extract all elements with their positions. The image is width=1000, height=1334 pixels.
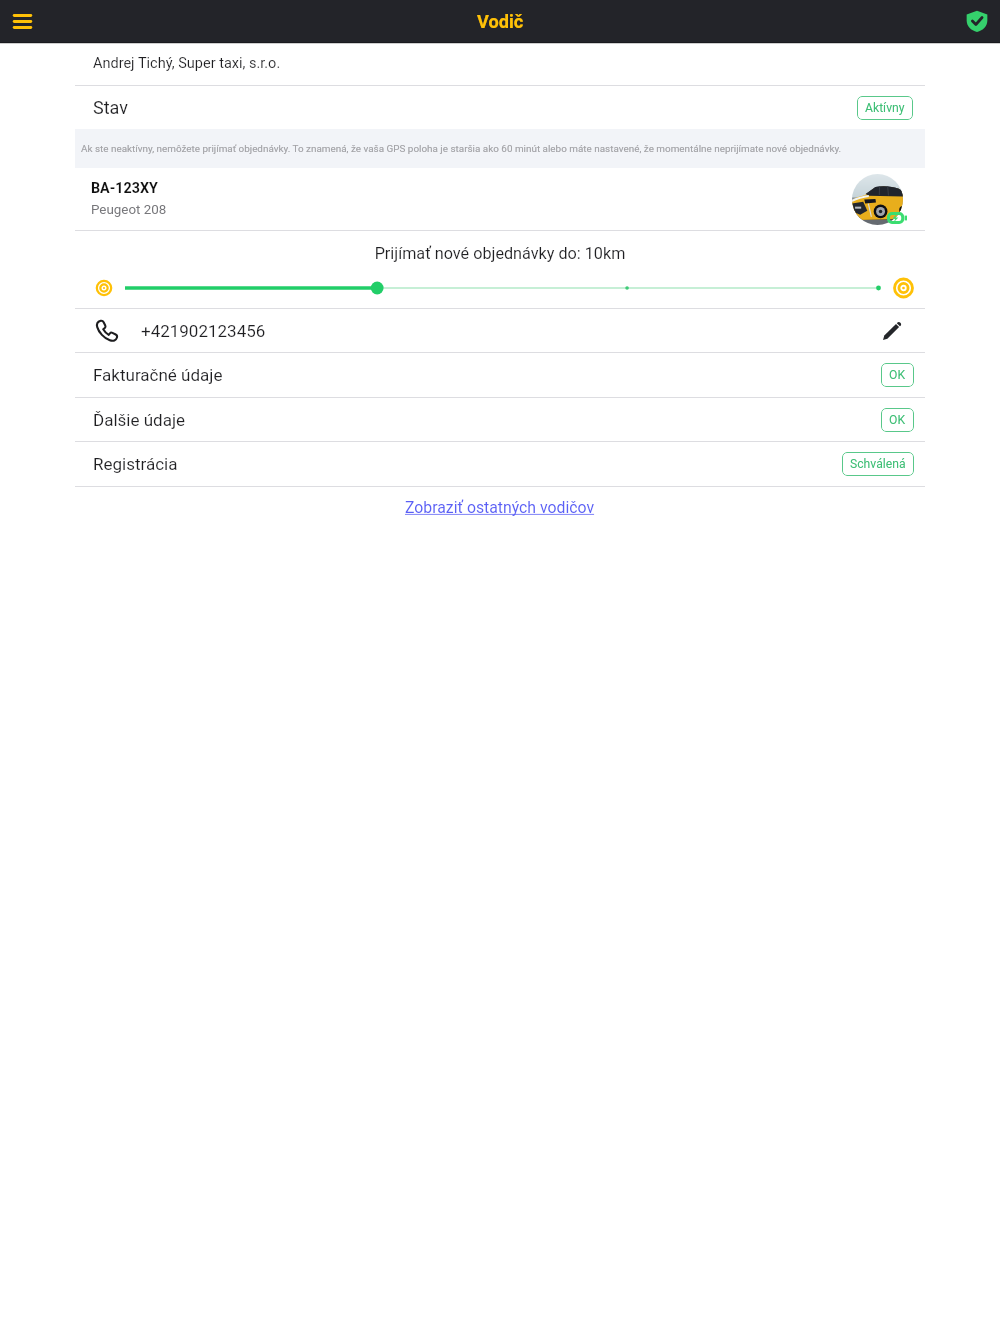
staticText: Schválená bbox=[850, 457, 906, 471]
staticText: Prijímať nové objednávky do: 10km bbox=[75, 244, 925, 263]
button[interactable]: OK bbox=[881, 408, 914, 432]
staticText: Aktívny bbox=[865, 101, 905, 115]
button[interactable]: Open navigation menu bbox=[13, 14, 32, 29]
button[interactable]: OK bbox=[881, 363, 914, 387]
staticText: Stav bbox=[93, 97, 128, 118]
staticText: Ak ste neaktívny, nemôžete prijímať obje… bbox=[81, 143, 842, 155]
staticText: OK bbox=[889, 368, 906, 382]
button[interactable]: Aktívny bbox=[857, 96, 913, 120]
button[interactable]: Schválená bbox=[842, 452, 914, 476]
button[interactable]: Registrácia bbox=[75, 442, 925, 486]
staticText: Vodič bbox=[477, 11, 524, 32]
button[interactable]: Fakturačné údaje bbox=[75, 353, 925, 397]
staticText: Peugeot 208 bbox=[91, 202, 167, 218]
staticText: Ďalšie údaje bbox=[93, 410, 185, 430]
button[interactable]: Edit phone number bbox=[880, 319, 904, 343]
button[interactable]: Zobraziť ostatných vodičov bbox=[405, 498, 595, 517]
staticText: Fakturačné údaje bbox=[93, 365, 223, 385]
button[interactable]: Maximum order distance slider bbox=[75, 274, 925, 302]
staticText: OK bbox=[889, 413, 906, 427]
staticText: BA-123XY bbox=[91, 180, 158, 197]
staticText: Andrej Tichý, Super taxi, s.r.o. bbox=[93, 55, 281, 72]
staticText: +421902123456 bbox=[141, 321, 266, 341]
button[interactable]: Verified driver bbox=[966, 10, 988, 32]
button[interactable]: BA-123XY bbox=[75, 168, 925, 230]
button[interactable]: Ďalšie údaje bbox=[75, 398, 925, 441]
button[interactable]: +421902123456 bbox=[75, 309, 925, 352]
staticText: Registrácia bbox=[93, 454, 178, 474]
button[interactable]: Stav bbox=[75, 86, 925, 129]
